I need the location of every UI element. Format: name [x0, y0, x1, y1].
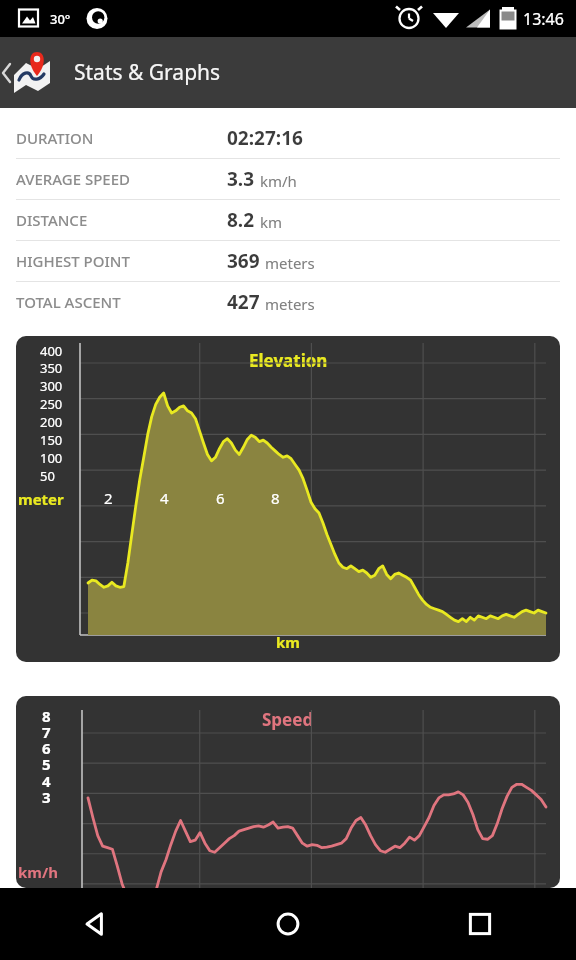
button[interactable]: AVERAGE SPEED — [0, 159, 576, 199]
staticText: 6 — [216, 488, 225, 508]
staticText: 30° — [50, 10, 71, 28]
staticText: 02:27:16 — [227, 125, 303, 151]
staticText: 400 — [40, 342, 63, 360]
button[interactable]: Speed — [16, 696, 560, 888]
staticText: 250 — [40, 395, 63, 413]
staticText: meters — [265, 253, 315, 273]
staticText: km/h — [18, 862, 58, 882]
button[interactable]: Back — [0, 888, 192, 960]
staticText: 427 — [227, 289, 260, 315]
staticText: Stats & Graphs — [74, 58, 221, 87]
staticText: HIGHEST POINT — [16, 251, 130, 271]
staticText: 8.2 — [227, 207, 255, 233]
button[interactable]: DISTANCE — [0, 200, 576, 240]
staticText: meter — [18, 489, 64, 509]
staticText: 5 — [42, 754, 51, 774]
staticText: 50 — [40, 467, 55, 485]
staticText: 3.3 — [227, 166, 255, 192]
staticText: 13:46 — [523, 8, 564, 30]
button[interactable]: HIGHEST POINT — [0, 241, 576, 281]
button[interactable]: Home — [192, 888, 384, 960]
staticText: 100 — [40, 449, 63, 467]
staticText: 2 — [104, 488, 113, 508]
staticText: 3 — [42, 787, 51, 807]
staticText: km — [276, 632, 300, 652]
button[interactable]: DURATION — [0, 118, 576, 158]
staticText: 4 — [42, 771, 51, 791]
staticText: DURATION — [16, 128, 94, 148]
staticText: TOTAL ASCENT — [16, 292, 121, 312]
staticText: km — [260, 212, 283, 232]
button[interactable]: TOTAL ASCENT — [0, 282, 576, 322]
staticText: Elevation — [249, 349, 328, 372]
staticText: 350 — [40, 359, 63, 377]
staticText: km/h — [260, 171, 297, 191]
staticText: 6 — [42, 738, 51, 758]
staticText: 8 — [271, 488, 280, 508]
staticText: 369 — [227, 248, 260, 274]
staticText: AVERAGE SPEED — [16, 169, 131, 189]
button[interactable]: Elevation — [16, 336, 560, 662]
staticText: 200 — [40, 413, 63, 431]
button[interactable]: Navigate up — [0, 41, 64, 105]
staticText: 8 — [42, 706, 51, 726]
staticText: 300 — [40, 377, 63, 395]
button[interactable]: Recent apps — [384, 888, 576, 960]
staticText: 150 — [40, 431, 63, 449]
staticText: 7 — [42, 722, 51, 742]
staticText: DISTANCE — [16, 210, 88, 230]
staticText: Speed — [262, 708, 314, 731]
staticText: meters — [265, 294, 315, 314]
staticText: 4 — [160, 488, 169, 508]
